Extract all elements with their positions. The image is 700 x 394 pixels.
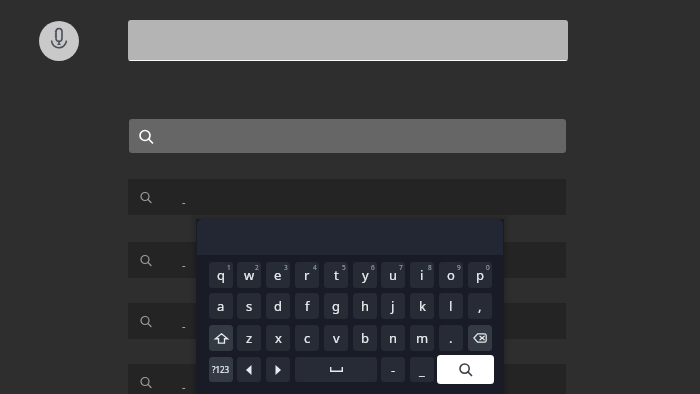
staticText: - bbox=[182, 194, 186, 209]
button[interactable]: _ bbox=[410, 357, 434, 382]
staticText: 7 bbox=[399, 263, 403, 272]
button[interactable]: - bbox=[128, 364, 566, 394]
staticText: 5 bbox=[342, 263, 346, 272]
staticText: a bbox=[217, 297, 225, 315]
button[interactable] bbox=[437, 355, 494, 384]
staticText: p bbox=[476, 266, 484, 284]
button[interactable] bbox=[295, 357, 377, 382]
button[interactable]: - bbox=[128, 179, 566, 215]
staticText: w bbox=[244, 266, 255, 284]
button[interactable]: e bbox=[266, 262, 290, 288]
button[interactable]: q bbox=[209, 262, 233, 288]
staticText: h bbox=[361, 297, 370, 315]
staticText: 4 bbox=[313, 263, 317, 272]
button[interactable] bbox=[237, 357, 261, 382]
staticText: r bbox=[304, 266, 310, 284]
staticText: 9 bbox=[457, 263, 461, 272]
button[interactable]: n bbox=[381, 325, 405, 351]
staticText: g bbox=[332, 297, 340, 315]
button[interactable]: - bbox=[128, 303, 566, 339]
button[interactable]: d bbox=[266, 293, 290, 319]
staticText: i bbox=[420, 266, 424, 284]
staticText: v bbox=[333, 329, 340, 347]
button[interactable]: f bbox=[295, 293, 319, 319]
button[interactable]: k bbox=[410, 293, 434, 319]
staticText: ?123 bbox=[212, 364, 230, 375]
staticText: e bbox=[274, 266, 282, 284]
staticText: 3 bbox=[284, 263, 288, 272]
staticText: , bbox=[478, 297, 482, 315]
button[interactable]: b bbox=[353, 325, 377, 351]
button[interactable]: h bbox=[353, 293, 377, 319]
button[interactable]: w bbox=[237, 262, 261, 288]
button[interactable]: y bbox=[353, 262, 377, 288]
button[interactable]: l bbox=[439, 293, 463, 319]
staticText: - bbox=[182, 318, 186, 333]
staticText: _ bbox=[419, 361, 425, 379]
button[interactable] bbox=[266, 357, 290, 382]
staticText: d bbox=[274, 297, 282, 315]
staticText: n bbox=[389, 329, 398, 347]
staticText: 2 bbox=[255, 263, 259, 272]
button[interactable]: . bbox=[439, 325, 463, 351]
staticText: o bbox=[447, 266, 455, 284]
button[interactable]: , bbox=[468, 293, 492, 319]
button[interactable]: p bbox=[468, 262, 492, 288]
staticText: 0 bbox=[486, 263, 490, 272]
button[interactable]: a bbox=[209, 293, 233, 319]
button[interactable]: r bbox=[295, 262, 319, 288]
button[interactable]: z bbox=[237, 325, 261, 351]
staticText: - bbox=[182, 257, 186, 272]
button[interactable]: u bbox=[381, 262, 405, 288]
button[interactable]: - bbox=[128, 242, 566, 278]
button[interactable] bbox=[129, 119, 566, 153]
button[interactable]: t bbox=[324, 262, 348, 288]
staticText: s bbox=[246, 297, 253, 315]
button[interactable]: x bbox=[266, 325, 290, 351]
staticText: 1 bbox=[227, 263, 231, 272]
button[interactable] bbox=[468, 325, 492, 351]
button[interactable]: g bbox=[324, 293, 348, 319]
staticText: - bbox=[182, 379, 186, 394]
button[interactable]: c bbox=[295, 325, 319, 351]
button[interactable]: i bbox=[410, 262, 434, 288]
button[interactable]: Voice search bbox=[39, 21, 79, 61]
staticText: j bbox=[391, 297, 395, 315]
staticText: u bbox=[389, 266, 398, 284]
staticText: z bbox=[246, 329, 253, 347]
staticText: . bbox=[449, 329, 453, 347]
staticText: 6 bbox=[371, 263, 375, 272]
button[interactable]: v bbox=[324, 325, 348, 351]
staticText: l bbox=[449, 297, 453, 315]
button[interactable]: j bbox=[381, 293, 405, 319]
button[interactable]: o bbox=[439, 262, 463, 288]
staticText: q bbox=[217, 266, 225, 284]
staticText: t bbox=[334, 266, 339, 284]
staticText: 8 bbox=[428, 263, 432, 272]
staticText: - bbox=[391, 361, 396, 379]
staticText: x bbox=[275, 329, 282, 347]
button[interactable]: s bbox=[237, 293, 261, 319]
button[interactable] bbox=[128, 20, 568, 61]
staticText: m bbox=[416, 329, 429, 347]
staticText: y bbox=[362, 266, 369, 284]
staticText: f bbox=[305, 297, 310, 315]
staticText: k bbox=[419, 297, 426, 315]
button[interactable]: - bbox=[381, 357, 405, 382]
button[interactable]: m bbox=[410, 325, 434, 351]
button[interactable] bbox=[209, 325, 233, 351]
staticText: b bbox=[361, 329, 369, 347]
button[interactable]: ?123 bbox=[209, 357, 233, 382]
staticText: c bbox=[304, 329, 311, 347]
